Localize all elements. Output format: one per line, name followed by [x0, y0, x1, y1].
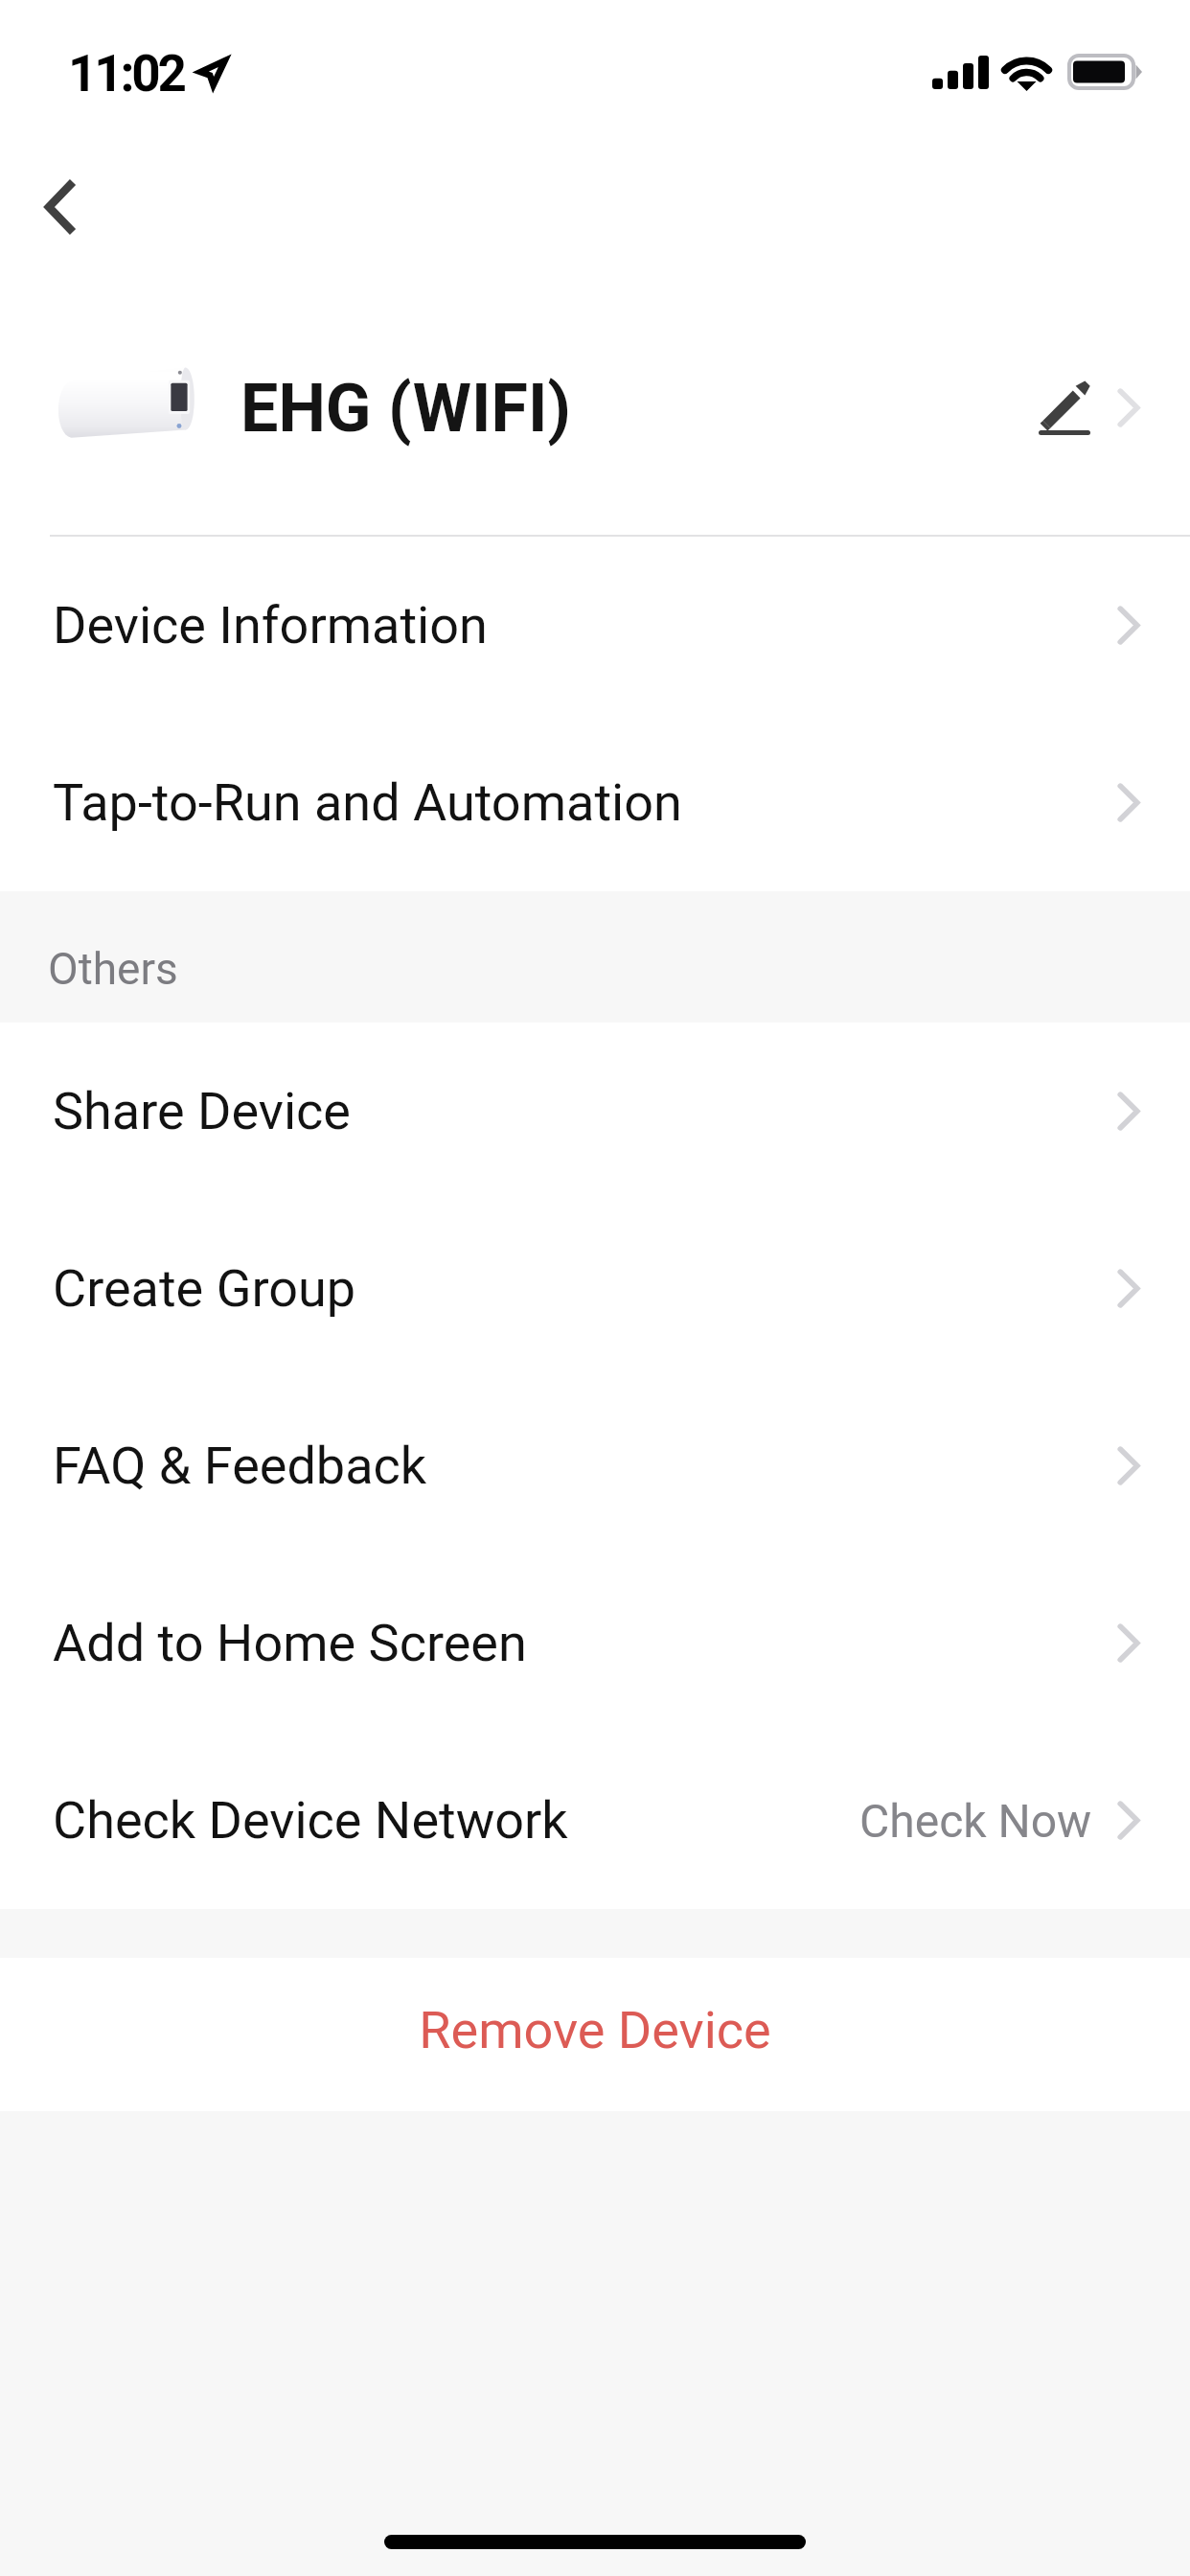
staticText: Check Device Network [53, 1790, 568, 1851]
staticText: FAQ & Feedback [53, 1436, 427, 1496]
staticText: Check Now [859, 1794, 1092, 1848]
button[interactable]: FAQ & Feedback [0, 1377, 1190, 1554]
button[interactable]: Check Device Network [0, 1732, 1190, 1909]
button[interactable]: Create Group [0, 1200, 1190, 1377]
button[interactable]: Tap-to-Run and Automation [0, 714, 1190, 891]
staticText: Share Device [53, 1081, 351, 1141]
button[interactable]: Add to Home Screen [0, 1554, 1190, 1732]
staticText: EHG (WIFI) [240, 369, 572, 448]
staticText: Remove Device [419, 2000, 771, 2060]
staticText: Add to Home Screen [53, 1613, 527, 1673]
staticText: Create Group [53, 1258, 356, 1319]
staticText: Device Information [53, 595, 488, 655]
staticText: Others [48, 943, 178, 995]
staticText: 11:02 [68, 44, 184, 103]
button[interactable]: Device Information [0, 537, 1190, 714]
button[interactable]: EHG (WIFI) [0, 319, 1190, 496]
staticText: Tap-to-Run and Automation [53, 772, 682, 833]
button[interactable]: Back [11, 157, 110, 257]
button[interactable]: Rename device [1018, 362, 1110, 454]
button[interactable]: Share Device [0, 1023, 1190, 1200]
button[interactable]: Remove Device [0, 1958, 1190, 2111]
